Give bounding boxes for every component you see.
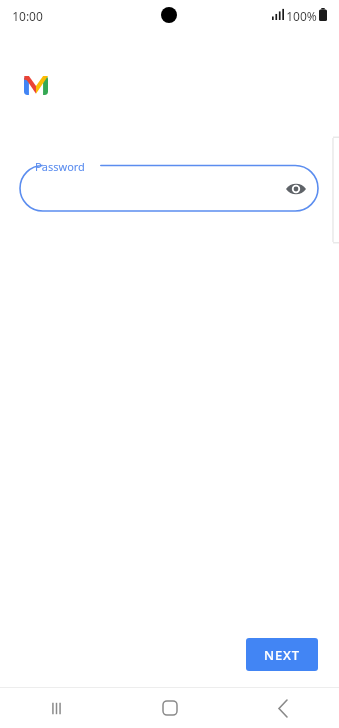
button[interactable]: NEXT [246,638,318,671]
button[interactable]: Recent apps [0,688,113,728]
staticText: 10:00 [12,8,43,24]
button[interactable]: Password [19,159,319,212]
staticText: Password [35,159,85,174]
button[interactable]: Back [226,688,339,728]
button[interactable]: Home [113,688,226,728]
button[interactable]: Show password [282,175,310,203]
staticText: 100% [286,8,317,24]
staticText: NEXT [264,646,300,664]
